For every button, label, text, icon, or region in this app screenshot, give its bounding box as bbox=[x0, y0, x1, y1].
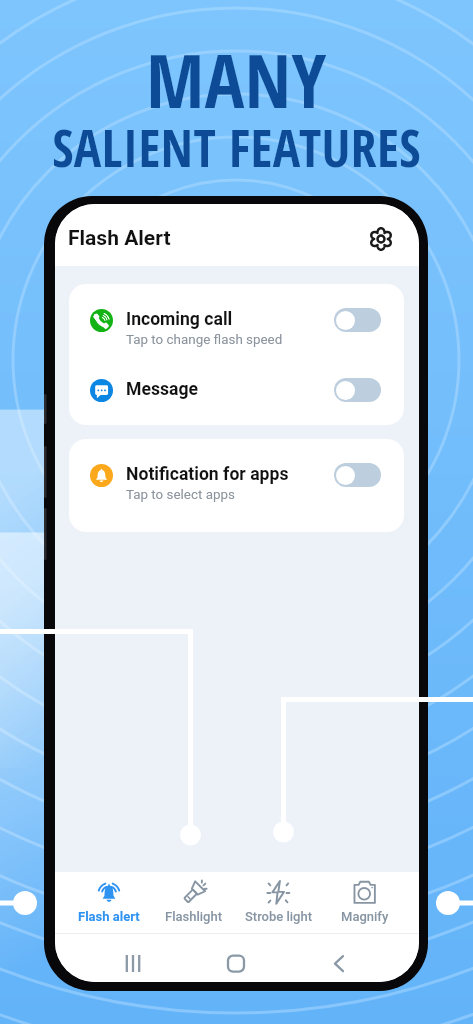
staticText: Magnify bbox=[341, 909, 389, 924]
button[interactable]: Flash alert bbox=[66, 872, 151, 933]
button[interactable]: Toggle bbox=[334, 308, 381, 332]
button[interactable]: Toggle bbox=[334, 463, 381, 487]
staticText: Incoming call bbox=[126, 309, 233, 330]
button[interactable]: Flashlight bbox=[151, 872, 236, 933]
button[interactable]: Magnify bbox=[322, 872, 408, 933]
button[interactable]: Incoming call bbox=[69, 284, 404, 354]
staticText: Message bbox=[126, 379, 199, 400]
staticText: Flashlight bbox=[165, 909, 223, 924]
staticText: Flash alert bbox=[78, 909, 140, 924]
staticText: MANY bbox=[146, 29, 327, 130]
staticText: Tap to select apps bbox=[126, 487, 235, 503]
button[interactable]: Message bbox=[69, 354, 404, 424]
button[interactable]: Settings bbox=[367, 225, 395, 253]
button[interactable]: Strobe light bbox=[236, 872, 322, 933]
button[interactable]: Toggle bbox=[334, 378, 381, 402]
staticText: Strobe light bbox=[245, 909, 313, 924]
staticText: Tap to change flash speed bbox=[126, 332, 283, 348]
staticText: Flash Alert bbox=[68, 226, 171, 251]
staticText: Notification for apps bbox=[126, 464, 289, 485]
button[interactable]: Notification for apps bbox=[69, 439, 404, 509]
staticText: SALIENT FEATURES bbox=[52, 112, 421, 182]
